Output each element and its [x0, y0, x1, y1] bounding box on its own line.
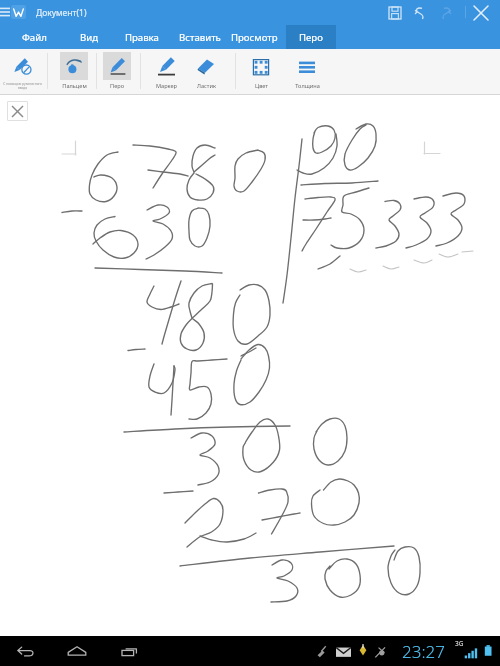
button[interactable]: Перо: [101, 51, 133, 93]
button[interactable]: Просмотр: [225, 25, 283, 49]
button[interactable]: Close: [471, 3, 491, 23]
staticText: С помощью рукописного ввода: [3, 82, 42, 90]
button[interactable]: Вид: [74, 25, 104, 49]
staticText: Толщина: [295, 82, 320, 90]
button[interactable]: Undo: [410, 3, 430, 23]
button[interactable]: Вставить: [174, 25, 226, 49]
button[interactable]: Home: [64, 639, 90, 665]
staticText: Перо: [299, 31, 323, 44]
button[interactable]: Маркер: [150, 51, 182, 93]
button[interactable]: Файл: [18, 25, 50, 49]
staticText: Документ(1): [36, 7, 87, 19]
staticText: Пальцем: [62, 82, 87, 90]
staticText: Вставить: [179, 31, 221, 44]
button[interactable]: Menu: [0, 3, 14, 21]
staticText: 23:27: [402, 640, 445, 663]
button[interactable]: Пальцем: [58, 51, 90, 93]
button[interactable]: Recents: [117, 639, 143, 665]
button[interactable]: Правка: [122, 25, 162, 49]
staticText: 3G: [455, 639, 464, 648]
button[interactable]: С помощью рукописного ввода: [6, 51, 38, 93]
staticText: Файл: [22, 31, 47, 44]
staticText: Просмотр: [231, 31, 278, 44]
staticText: Вид: [80, 31, 99, 44]
button[interactable]: Перо: [286, 25, 336, 49]
staticText: Правка: [125, 31, 159, 44]
staticText: Маркер: [156, 82, 177, 90]
button[interactable]: Цвет: [245, 51, 277, 93]
button[interactable]: Writer: [11, 5, 26, 19]
button[interactable]: Ластик: [190, 51, 222, 93]
button[interactable]: Close panel: [7, 101, 28, 121]
button[interactable]: Толщина: [291, 51, 323, 93]
staticText: Цвет: [255, 82, 268, 90]
staticText: Ластик: [197, 82, 216, 90]
button[interactable]: Back: [13, 639, 39, 665]
button[interactable]: Redo: [436, 3, 456, 23]
staticText: Перо: [110, 82, 124, 90]
button[interactable]: Save: [385, 3, 405, 23]
